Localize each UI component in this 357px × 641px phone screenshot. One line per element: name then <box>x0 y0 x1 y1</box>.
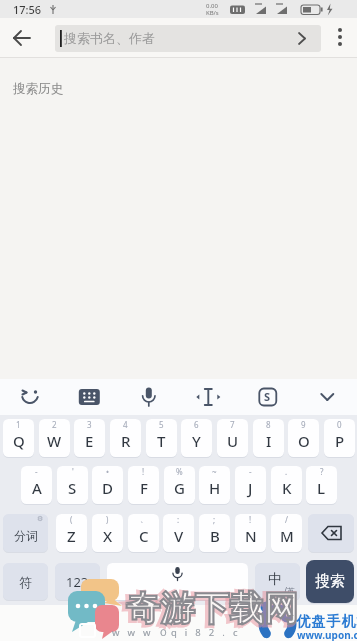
button[interactable]: 123 <box>55 563 100 600</box>
button[interactable]: 搜索书名、作者 <box>55 25 321 52</box>
staticText: / <box>285 514 288 525</box>
button[interactable]: 0 <box>324 419 355 457</box>
button[interactable]: - <box>21 466 52 504</box>
staticText: I <box>266 431 272 451</box>
staticText: : <box>177 514 180 525</box>
button[interactable]: 4 <box>110 419 141 457</box>
staticText: 5 <box>159 419 164 430</box>
button[interactable]: . <box>271 466 302 504</box>
button[interactable] <box>328 24 352 48</box>
staticText: ( <box>70 514 73 525</box>
staticText: - <box>35 466 38 477</box>
button[interactable]: 1 <box>3 419 34 457</box>
staticText: 搜索 <box>315 572 345 591</box>
staticText: 符 <box>19 574 32 590</box>
staticText: 中 <box>268 571 282 589</box>
staticText: 奇游下载网 <box>126 587 299 630</box>
staticText: 3 <box>87 419 92 430</box>
staticText: . <box>285 466 288 477</box>
button[interactable]: 9 <box>288 419 319 457</box>
staticText: ~ <box>212 466 217 477</box>
staticText: ⚙ <box>37 515 44 523</box>
button[interactable] <box>8 24 36 52</box>
button[interactable]: ( <box>56 514 87 552</box>
button[interactable]: 5 <box>146 419 177 457</box>
button[interactable]: : <box>163 514 194 552</box>
staticText: 17:56 <box>13 2 42 17</box>
staticText: 9 <box>301 419 306 430</box>
staticText: A <box>32 478 42 498</box>
staticText: M <box>280 526 294 546</box>
staticText: ' <box>72 466 74 477</box>
staticText: Y <box>192 431 201 451</box>
staticText: ! <box>249 514 252 525</box>
staticText: K <box>282 478 292 498</box>
staticText: 1 <box>16 419 21 430</box>
staticText: F <box>140 478 148 498</box>
staticText: G <box>174 478 185 498</box>
staticText: 2 <box>52 419 57 430</box>
button[interactable]: 2 <box>39 419 70 457</box>
staticText: - <box>249 466 252 477</box>
staticText: 搜索历史 <box>13 81 63 97</box>
button[interactable] <box>240 379 296 415</box>
staticText: D <box>102 478 113 498</box>
button[interactable]: % <box>164 466 195 504</box>
staticText: P <box>335 431 345 451</box>
staticText: KB/s <box>206 9 219 17</box>
staticText: U <box>227 431 239 451</box>
button[interactable]: ) <box>92 514 123 552</box>
button[interactable]: ! <box>128 466 159 504</box>
button[interactable]: 中 <box>255 563 300 600</box>
button[interactable]: 8 <box>253 419 284 457</box>
button[interactable]: ; <box>199 514 230 552</box>
staticText: B <box>210 526 220 546</box>
staticText: 8 <box>266 419 271 430</box>
button[interactable]: ? <box>306 466 337 504</box>
button[interactable]: • <box>92 466 123 504</box>
button[interactable] <box>121 379 177 415</box>
button[interactable]: 搜索 <box>306 560 354 603</box>
button[interactable] <box>62 379 118 415</box>
staticText: 奇游下载网 <box>124 588 297 631</box>
button[interactable] <box>2 379 58 415</box>
button[interactable] <box>107 563 248 600</box>
staticText: Z <box>67 526 76 546</box>
staticText: S <box>68 478 77 498</box>
button[interactable]: 分词 <box>3 514 48 552</box>
button[interactable]: - <box>235 466 266 504</box>
staticText: O <box>298 431 310 451</box>
staticText: C <box>139 526 149 546</box>
staticText: V <box>174 526 184 546</box>
staticText: J <box>248 478 253 498</box>
staticText: ? <box>320 466 324 477</box>
button[interactable]: 、 <box>128 514 159 552</box>
staticText: ! <box>142 466 145 477</box>
button[interactable]: / <box>271 514 302 552</box>
button[interactable] <box>181 379 237 415</box>
staticText: 0 <box>337 419 342 430</box>
staticText: ) <box>106 514 109 525</box>
button[interactable]: 7 <box>217 419 248 457</box>
staticText: 0.00 <box>206 2 218 10</box>
staticText: 7 <box>230 419 235 430</box>
button[interactable] <box>300 379 356 415</box>
button[interactable]: ! <box>235 514 266 552</box>
button[interactable]: 6 <box>181 419 212 457</box>
button[interactable]: ~ <box>199 466 230 504</box>
staticText: www.upon.cc <box>297 628 357 641</box>
staticText: 4 <box>123 419 128 430</box>
button[interactable] <box>308 514 354 552</box>
staticText: • <box>106 466 110 477</box>
button[interactable]: 符 <box>3 563 48 600</box>
staticText: W <box>47 431 62 451</box>
staticText: H <box>209 478 221 498</box>
staticText: w w w Ｏq i 8 2 . c <box>112 626 241 639</box>
staticText: R <box>121 431 131 451</box>
button[interactable]: ' <box>57 466 88 504</box>
staticText: % <box>176 466 183 477</box>
staticText: 123 <box>66 573 89 591</box>
button[interactable]: 3 <box>74 419 105 457</box>
staticText: E <box>85 431 94 451</box>
staticText: 分词 <box>14 528 38 543</box>
